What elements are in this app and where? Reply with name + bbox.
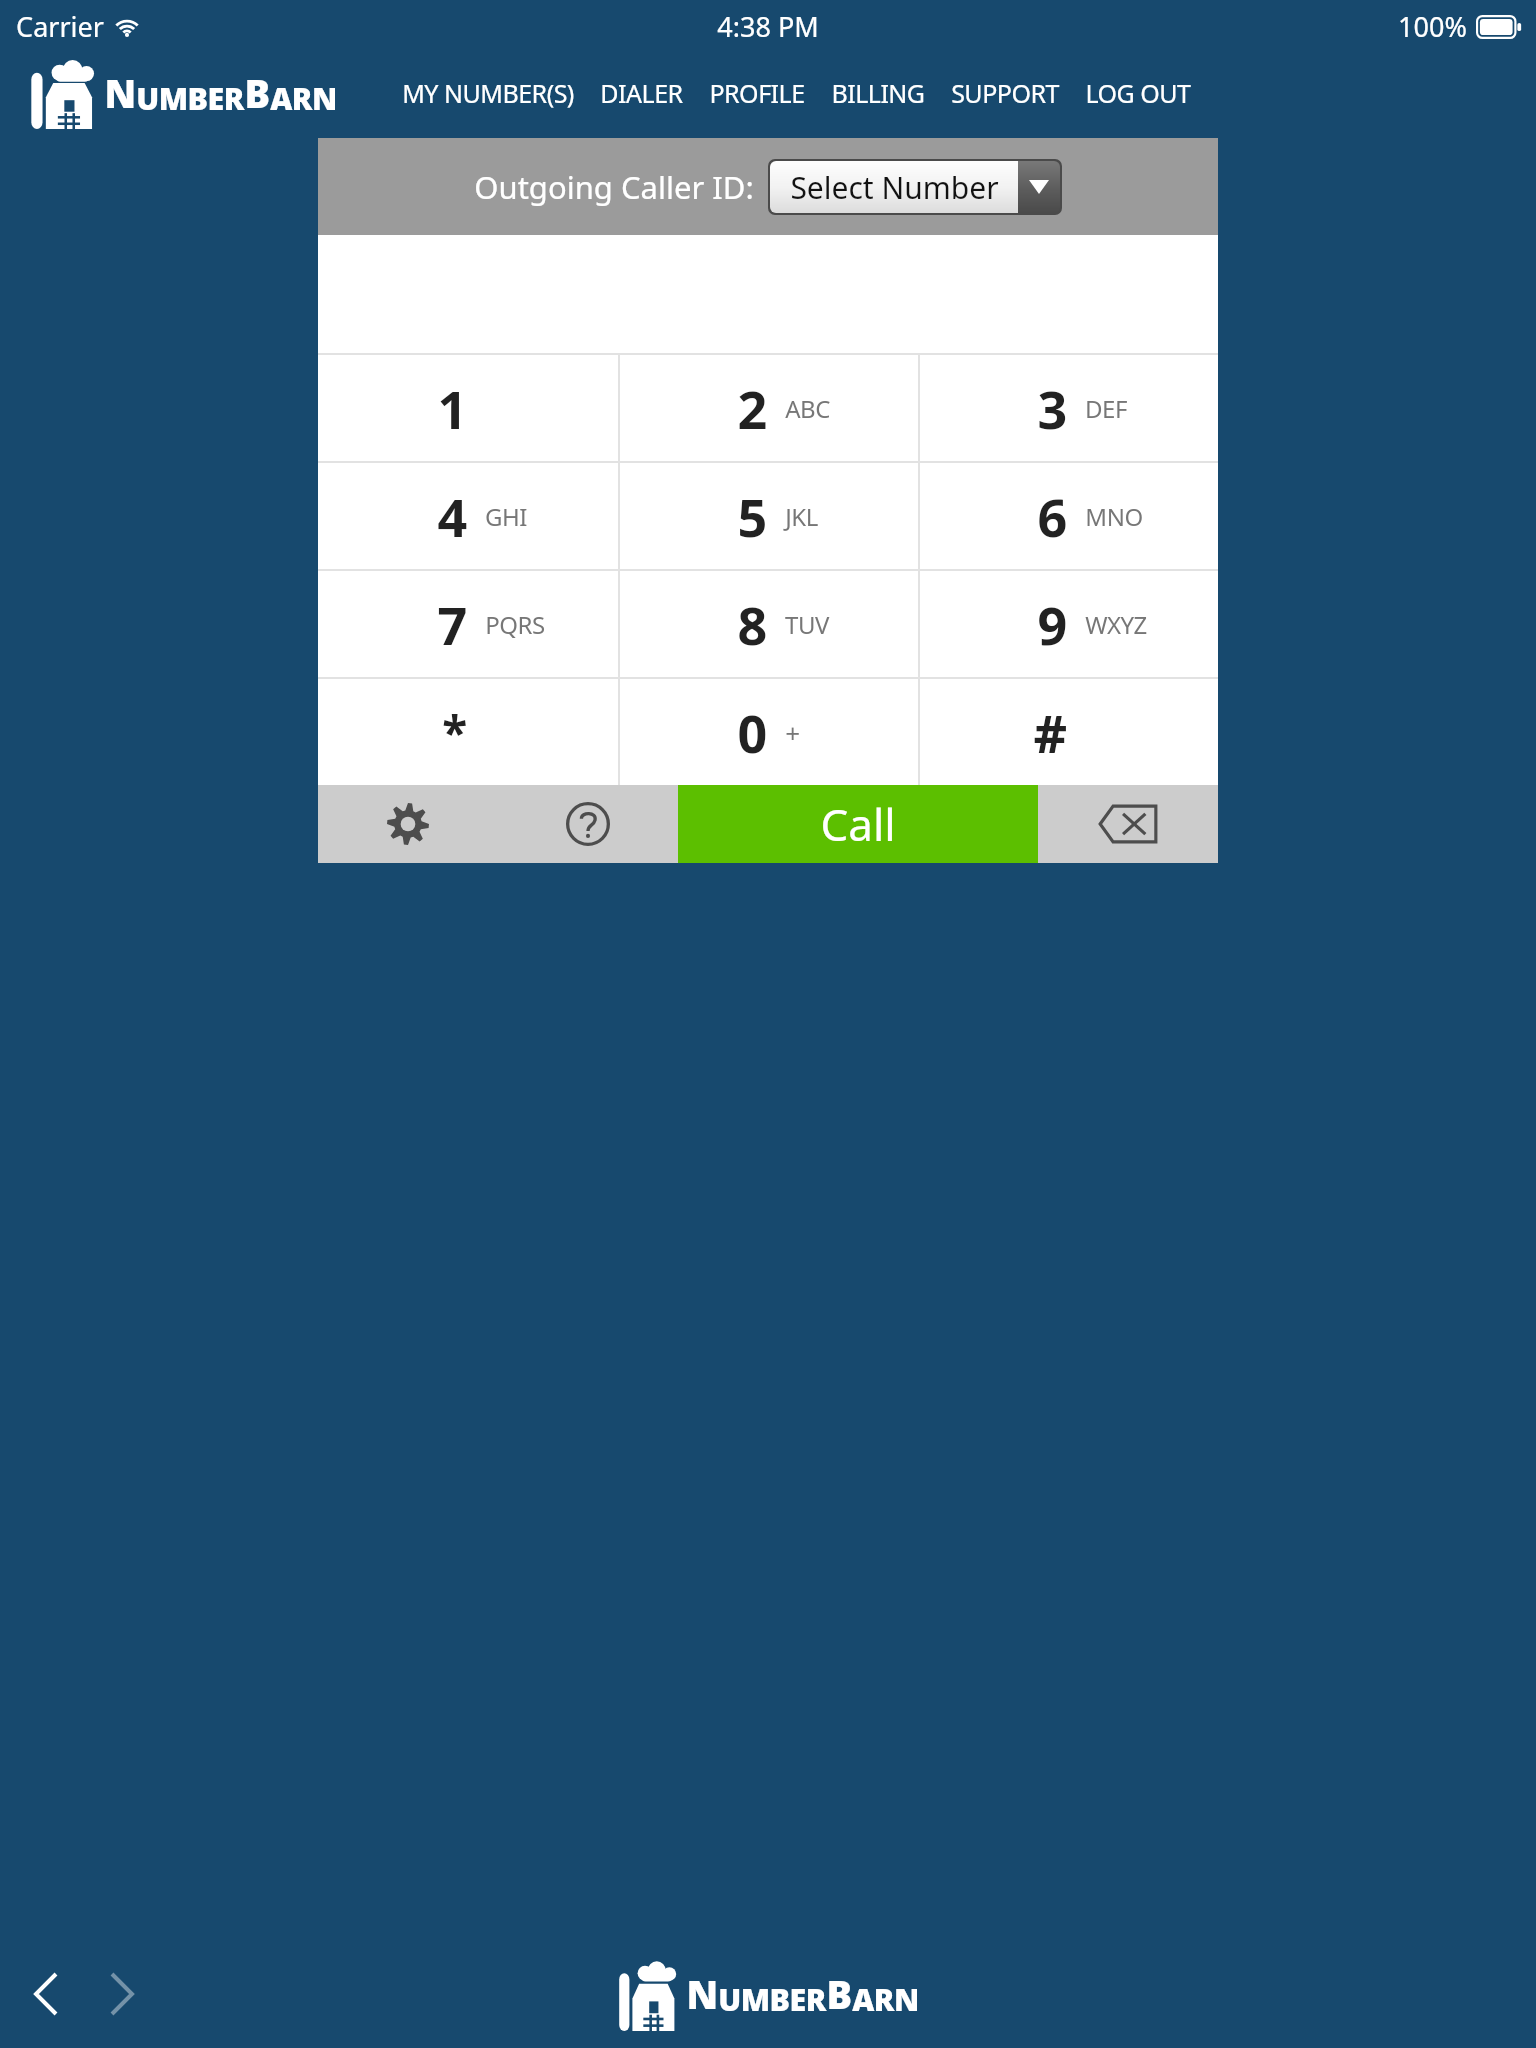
- button[interactable]: LOG OUT: [1072, 66, 1204, 120]
- staticText: DIALER: [600, 76, 683, 110]
- button[interactable]: Help: [498, 785, 678, 863]
- staticText: 4: [437, 481, 467, 552]
- button[interactable]: Call: [678, 785, 1038, 863]
- staticText: B: [244, 67, 270, 119]
- staticText: 3: [1037, 373, 1067, 444]
- button[interactable]: MY NUMBER(S): [389, 66, 587, 120]
- staticText: N: [104, 67, 136, 119]
- button[interactable]: 3: [918, 355, 1218, 461]
- button[interactable]: 5: [618, 463, 918, 569]
- staticText: BILLING: [831, 76, 925, 110]
- staticText: #: [1033, 697, 1067, 768]
- staticText: *: [442, 701, 467, 764]
- staticText: 6: [1037, 481, 1067, 552]
- staticText: Select Number: [790, 167, 999, 208]
- button[interactable]: 7: [318, 571, 618, 677]
- staticText: TUV: [785, 608, 829, 641]
- button[interactable]: PROFILE: [696, 66, 818, 120]
- button[interactable]: #: [918, 679, 1218, 785]
- staticText: 9: [1037, 589, 1067, 660]
- button[interactable]: *: [318, 679, 618, 785]
- button[interactable]: 6: [918, 463, 1218, 569]
- staticText: ARN: [270, 78, 337, 119]
- button[interactable]: Select Number: [768, 159, 1062, 215]
- button[interactable]: DIALER: [587, 66, 696, 120]
- staticText: 5: [737, 481, 767, 552]
- staticText: UMBER: [136, 78, 244, 119]
- staticText: +: [785, 715, 800, 750]
- staticText: PQRS: [485, 608, 545, 641]
- staticText: ARN: [852, 1979, 919, 2020]
- button[interactable]: 4: [318, 463, 618, 569]
- staticText: 0: [737, 697, 767, 768]
- staticText: 4:38 PM: [717, 8, 819, 45]
- button[interactable]: 0: [618, 679, 918, 785]
- staticText: MNO: [1085, 500, 1143, 533]
- button[interactable]: Backspace: [1038, 785, 1218, 863]
- staticText: PROFILE: [709, 76, 805, 110]
- staticText: N: [686, 1968, 718, 2020]
- button[interactable]: 9: [918, 571, 1218, 677]
- staticText: LOG OUT: [1085, 76, 1191, 110]
- staticText: JKL: [785, 500, 818, 533]
- staticText: Call: [820, 794, 896, 854]
- staticText: SUPPORT: [951, 76, 1059, 110]
- other: NumberBarn logo: [30, 57, 96, 129]
- staticText: 100%: [1398, 8, 1467, 45]
- staticText: B: [826, 1968, 852, 2020]
- staticText: GHI: [485, 500, 527, 533]
- staticText: UMBER: [718, 1979, 826, 2020]
- staticText: MY NUMBER(S): [402, 76, 574, 110]
- staticText: ABC: [785, 392, 830, 425]
- staticText: 7: [437, 589, 467, 660]
- staticText: 1: [437, 373, 467, 444]
- button[interactable]: 1: [318, 355, 618, 461]
- staticText: 8: [737, 589, 767, 660]
- button[interactable]: SUPPORT: [938, 66, 1072, 120]
- button[interactable]: 8: [618, 571, 918, 677]
- button[interactable]: 2: [618, 355, 918, 461]
- staticText: DEF: [1085, 392, 1127, 425]
- staticText: WXYZ: [1085, 608, 1147, 641]
- button[interactable]: NumberBarn logo: [30, 57, 337, 129]
- staticText: Carrier: [16, 8, 104, 45]
- button[interactable]: Settings: [318, 785, 498, 863]
- staticText: 2: [737, 373, 767, 444]
- button[interactable]: Forward: [102, 1964, 142, 2024]
- button[interactable]: Back: [26, 1964, 66, 2024]
- staticText: Outgoing Caller ID:: [474, 166, 754, 208]
- button[interactable]: BILLING: [818, 66, 938, 120]
